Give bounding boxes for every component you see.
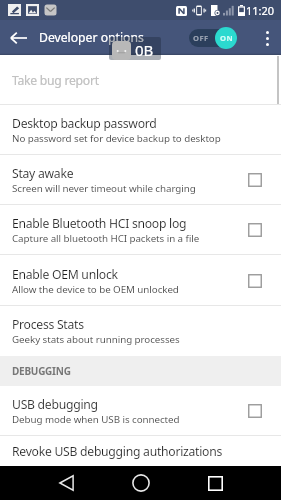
staticText: Process Stats xyxy=(12,316,84,333)
button[interactable]: Enable OEM unlock xyxy=(0,255,281,306)
staticText: Enable OEM unlock xyxy=(12,266,118,283)
staticText: OFF xyxy=(193,33,209,43)
button[interactable]: Enable Bluetooth HCI snoop log xyxy=(235,210,281,250)
staticText: Allow the device to be OEM unlocked xyxy=(12,283,179,296)
button[interactable]: Take bug report xyxy=(0,55,281,105)
staticText: Developer options xyxy=(39,29,144,46)
staticText: Revoke USB debugging authorizations xyxy=(12,443,222,460)
button[interactable]: USB debugging xyxy=(0,386,281,436)
button[interactable]: USB debugging xyxy=(235,391,281,431)
staticText: Capture all bluetooth HCI packets in a f… xyxy=(12,232,200,245)
button[interactable]: Stay awake xyxy=(235,160,281,200)
staticText: ON xyxy=(220,33,233,43)
staticText: USB debugging xyxy=(12,396,98,413)
staticText: Screen will never timeout while charging xyxy=(12,182,196,195)
staticText: 0B xyxy=(135,40,154,60)
staticText: Take bug report xyxy=(12,72,99,89)
staticText: Stay awake xyxy=(12,165,74,182)
staticText: No password set for device backup to des… xyxy=(12,132,221,145)
button[interactable]: Developer options toggle xyxy=(189,27,237,49)
staticText: Debug mode when USB is connected xyxy=(12,413,180,426)
button[interactable]: Recents xyxy=(195,466,235,500)
button[interactable]: Enable OEM unlock xyxy=(235,261,281,301)
button[interactable]: Process Stats xyxy=(0,306,281,356)
button[interactable]: Stay awake xyxy=(0,155,281,205)
staticText: 11:20 xyxy=(246,3,275,18)
button[interactable]: Data usage overlay xyxy=(109,37,161,60)
button[interactable]: Navigate up xyxy=(5,25,31,51)
button[interactable]: Home xyxy=(121,466,161,500)
button[interactable]: Revoke USB debugging authorizations xyxy=(0,436,281,466)
staticText: Geeky stats about running processes xyxy=(12,333,180,346)
staticText: Desktop backup password xyxy=(12,115,157,132)
button[interactable]: Enable Bluetooth HCI snoop log xyxy=(0,205,281,255)
button[interactable]: Back xyxy=(46,466,86,500)
button[interactable]: More options xyxy=(253,24,281,52)
staticText: Enable Bluetooth HCI snoop log xyxy=(12,215,187,232)
staticText: DEBUGGING xyxy=(12,364,71,378)
button[interactable]: Desktop backup password xyxy=(0,105,281,155)
